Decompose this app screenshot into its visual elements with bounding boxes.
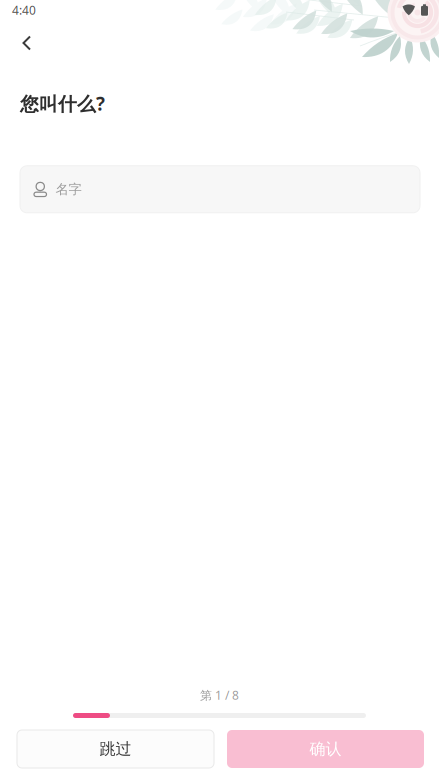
staticText: 第 1 / 8 [200,687,239,703]
staticText: 您叫什么? [20,91,105,116]
button[interactable]: Back [0,20,62,62]
button[interactable]: 跳过 [17,730,214,768]
button[interactable]: 确认 [227,730,424,768]
staticText: 4:40 [12,2,36,18]
staticText: 确认 [309,739,341,759]
staticText: 跳过 [99,739,131,759]
staticText: 名字 [55,181,81,197]
